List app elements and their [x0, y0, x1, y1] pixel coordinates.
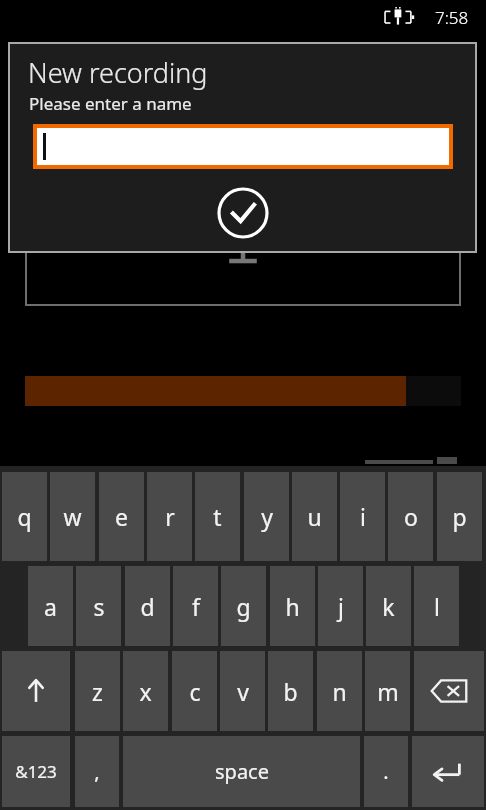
- button[interactable]: a: [28, 566, 73, 646]
- staticText: j: [338, 591, 344, 622]
- button[interactable]: Backspace: [414, 651, 484, 731]
- button[interactable]: s: [76, 566, 121, 646]
- button[interactable]: space: [123, 736, 360, 807]
- button[interactable]: d: [125, 566, 170, 646]
- staticText: m: [377, 676, 399, 707]
- button[interactable]: e: [99, 472, 144, 561]
- button[interactable]: u: [292, 472, 337, 561]
- staticText: v: [237, 676, 249, 707]
- button[interactable]: [33, 124, 453, 169]
- staticText: New recording: [28, 54, 208, 91]
- staticText: t: [213, 501, 222, 532]
- button[interactable]: m: [365, 651, 410, 731]
- button[interactable]: &123: [2, 736, 70, 807]
- staticText: e: [115, 501, 128, 532]
- button[interactable]: Shift: [2, 651, 70, 731]
- staticText: w: [63, 501, 82, 532]
- staticText: 7:58: [435, 6, 469, 29]
- staticText: s: [93, 591, 105, 622]
- staticText: ,: [94, 758, 100, 785]
- staticText: d: [140, 591, 155, 622]
- other: Enter: [433, 761, 463, 783]
- button[interactable]: ,: [75, 736, 119, 807]
- staticText: a: [44, 591, 57, 622]
- staticText: x: [139, 676, 152, 707]
- button[interactable]: x: [123, 651, 168, 731]
- button[interactable]: c: [172, 651, 217, 731]
- button[interactable]: t: [195, 472, 240, 561]
- button[interactable]: j: [318, 566, 363, 646]
- button[interactable]: Confirm: [216, 186, 270, 240]
- staticText: c: [189, 676, 201, 707]
- staticText: n: [332, 676, 347, 707]
- button[interactable]: r: [147, 472, 192, 561]
- button[interactable]: b: [268, 651, 313, 731]
- button[interactable]: n: [317, 651, 362, 731]
- button[interactable]: f: [173, 566, 218, 646]
- staticText: p: [452, 501, 467, 532]
- staticText: u: [307, 501, 322, 532]
- button[interactable]: o: [388, 472, 433, 561]
- button[interactable]: Enter: [412, 736, 484, 807]
- button[interactable]: z: [75, 651, 120, 731]
- button[interactable]: y: [244, 472, 289, 561]
- button[interactable]: q: [2, 472, 47, 561]
- button[interactable]: w: [50, 472, 95, 561]
- staticText: h: [285, 591, 300, 622]
- staticText: y: [261, 501, 273, 532]
- button[interactable]: h: [270, 566, 315, 646]
- staticText: g: [236, 591, 251, 622]
- staticText: Please enter a name: [29, 92, 192, 115]
- staticText: b: [283, 676, 298, 707]
- button[interactable]: v: [220, 651, 265, 731]
- staticText: &123: [15, 760, 57, 783]
- other: Backspace: [431, 679, 467, 703]
- staticText: z: [92, 676, 103, 707]
- staticText: o: [404, 501, 418, 532]
- button[interactable]: i: [340, 472, 385, 561]
- button[interactable]: k: [366, 566, 411, 646]
- staticText: r: [165, 501, 175, 532]
- staticText: i: [360, 501, 366, 532]
- staticText: .: [383, 758, 389, 785]
- staticText: space: [215, 758, 269, 785]
- staticText: q: [17, 501, 32, 532]
- staticText: f: [192, 591, 200, 622]
- button[interactable]: .: [364, 736, 408, 807]
- other: Shift: [23, 678, 49, 704]
- button[interactable]: p: [437, 472, 482, 561]
- button[interactable]: g: [221, 566, 266, 646]
- staticText: k: [382, 591, 395, 622]
- staticText: l: [434, 591, 440, 622]
- button[interactable]: l: [414, 566, 459, 646]
